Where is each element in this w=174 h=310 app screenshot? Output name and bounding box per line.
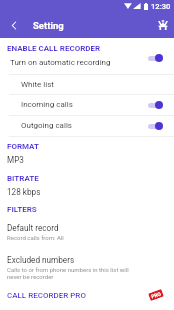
button[interactable]: Turn on automatic recording xyxy=(0,54,174,74)
button[interactable]: Excluded numbers xyxy=(0,253,174,281)
staticText: White list xyxy=(21,80,54,89)
staticText: PRO xyxy=(150,290,162,300)
staticText: MP3 xyxy=(7,155,24,165)
staticText: 12:30 xyxy=(151,2,171,11)
staticText: BITRATE xyxy=(7,174,39,183)
staticText: CALL RECORDER PRO xyxy=(7,291,86,300)
staticText: Setting xyxy=(33,20,64,31)
staticText: FILTERS xyxy=(7,205,37,214)
button[interactable]: Back xyxy=(3,15,25,37)
staticText: Incoming calls xyxy=(21,100,73,109)
button[interactable]: Default record xyxy=(0,221,174,241)
staticText: Excluded numbers xyxy=(7,255,75,265)
button[interactable]: CALL RECORDER PRO xyxy=(0,288,174,306)
button[interactable]: White list xyxy=(0,74,174,95)
staticText: FORMAT xyxy=(7,142,39,151)
button[interactable]: Outgoing calls xyxy=(0,115,174,136)
staticText: Record calls from: All xyxy=(7,234,64,241)
staticText: Default record xyxy=(7,223,59,233)
staticText: ENABLE CALL RECORDER xyxy=(7,44,101,53)
button[interactable]: Incoming calls xyxy=(0,94,174,115)
button[interactable]: Premium shop xyxy=(150,14,174,38)
staticText: Turn on automatic recording xyxy=(10,58,111,67)
staticText: Calls to or from phone numbers in this l… xyxy=(7,266,129,281)
staticText: 128 kbps xyxy=(7,187,41,197)
staticText: Outgoing calls xyxy=(21,121,72,130)
